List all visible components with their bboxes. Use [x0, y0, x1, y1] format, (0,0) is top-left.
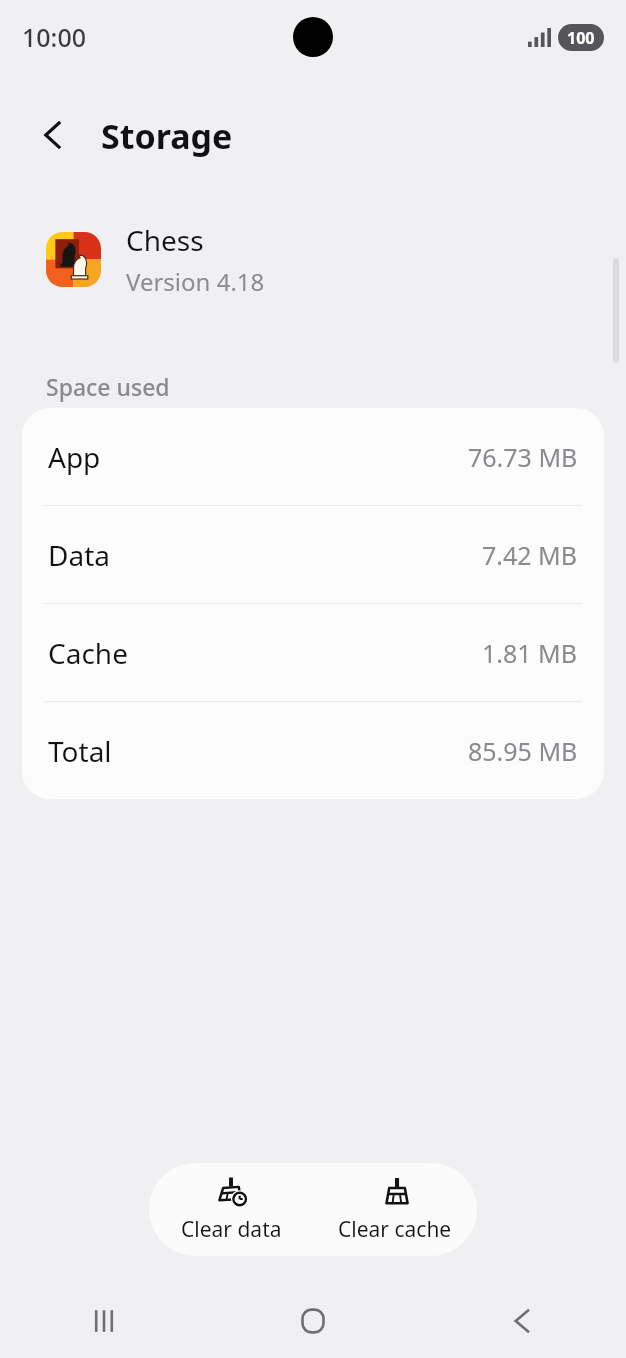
button[interactable]: Back	[417, 1284, 626, 1358]
button[interactable]: Data	[22, 506, 604, 603]
staticText: 7.42 MB	[482, 538, 578, 572]
button[interactable]: Total	[22, 702, 604, 799]
staticText: Data	[48, 536, 110, 574]
staticText: 10:00	[22, 20, 87, 54]
staticText: Clear data	[181, 1215, 282, 1244]
button[interactable]: Clear cache	[313, 1163, 477, 1256]
button[interactable]: Back	[26, 108, 80, 162]
button[interactable]: Home	[208, 1284, 417, 1358]
staticText: Space used	[46, 371, 170, 402]
staticText: App	[48, 438, 101, 476]
staticText: Total	[48, 732, 112, 770]
staticText: 1.81 MB	[482, 636, 578, 670]
staticText: 100	[567, 27, 595, 49]
button[interactable]: App	[22, 408, 604, 505]
staticText: Cache	[48, 634, 128, 672]
staticText: Chess	[126, 221, 204, 259]
staticText: Storage	[101, 113, 233, 159]
staticText: Version 4.18	[126, 265, 265, 298]
staticText: 76.73 MB	[468, 440, 578, 474]
button[interactable]: Recents	[0, 1284, 208, 1358]
staticText: Clear cache	[338, 1215, 452, 1244]
staticText: 85.95 MB	[468, 734, 578, 768]
button[interactable]: Clear data	[149, 1163, 313, 1256]
button[interactable]: Cache	[22, 604, 604, 701]
